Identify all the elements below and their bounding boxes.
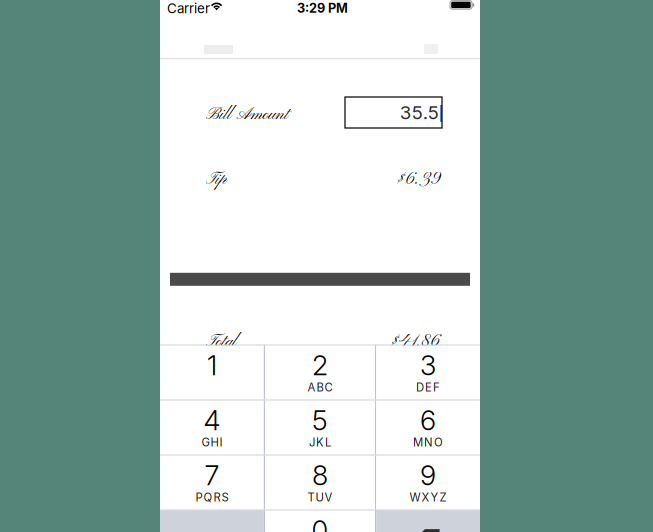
button[interactable]: Delete xyxy=(376,511,480,532)
button[interactable]: 1 xyxy=(160,346,264,400)
staticText: W X Y Z xyxy=(410,491,447,504)
staticText: 6 xyxy=(420,404,436,437)
staticText: G H I xyxy=(201,436,222,449)
staticText: Carrier xyxy=(167,0,210,16)
staticText: T U V xyxy=(307,491,332,504)
staticText: Tip xyxy=(205,169,226,190)
button[interactable]: 7 xyxy=(160,456,264,510)
button[interactable]: 4 xyxy=(160,401,264,455)
staticText: 3 xyxy=(420,349,436,382)
button[interactable]: 5 xyxy=(265,401,375,455)
staticText: 4 xyxy=(203,404,220,437)
staticText: A B C xyxy=(307,381,332,394)
button[interactable]: 0 xyxy=(265,511,375,532)
staticText: Bill Amount xyxy=(205,104,288,126)
button[interactable]: Bill amount xyxy=(345,97,442,128)
staticText: D E F xyxy=(416,381,440,394)
staticText: 0 xyxy=(311,514,328,532)
button[interactable]: 2 xyxy=(265,346,375,400)
staticText: $41.86 xyxy=(389,331,440,353)
staticText: $6.39 xyxy=(395,169,440,190)
staticText: 35.5 xyxy=(400,101,439,124)
button[interactable]: 6 xyxy=(376,401,480,455)
button[interactable]: 3 xyxy=(376,346,480,400)
button[interactable]: 8 xyxy=(265,456,375,510)
staticText: 7 xyxy=(204,459,219,492)
staticText: 5 xyxy=(312,404,328,437)
staticText: J K L xyxy=(309,436,331,449)
staticText: 9 xyxy=(420,459,436,492)
staticText: 1 xyxy=(207,349,217,382)
button[interactable]: 9 xyxy=(376,456,480,510)
staticText: Total xyxy=(205,331,236,353)
staticText: 2 xyxy=(312,349,328,382)
staticText: 8 xyxy=(312,459,328,492)
staticText: 3:29 PM xyxy=(297,1,348,16)
staticText: P Q R S xyxy=(195,491,228,504)
staticText: M N O xyxy=(413,436,443,449)
